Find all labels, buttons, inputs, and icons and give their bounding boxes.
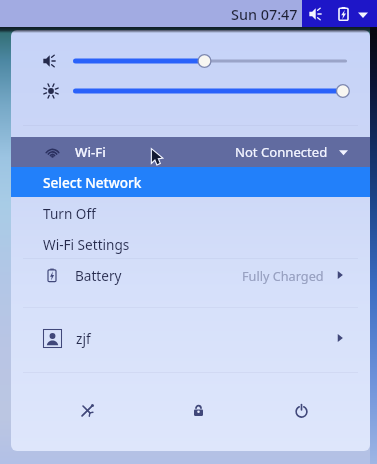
button[interactable]: Select Network xyxy=(11,167,370,197)
staticText: Sun 07:47 xyxy=(231,5,298,22)
button[interactable]: Battery xyxy=(11,260,370,290)
button[interactable]: Lock xyxy=(176,392,220,428)
button[interactable]: Settings xyxy=(65,392,109,428)
button[interactable]: zjf xyxy=(11,323,370,353)
button[interactable]: Wi-Fi Settings xyxy=(11,229,370,259)
staticText: Wi-Fi Settings xyxy=(43,235,130,254)
button[interactable]: System menu xyxy=(302,0,377,27)
button[interactable]: Wi-Fi xyxy=(11,137,370,167)
button[interactable]: Power xyxy=(279,392,323,428)
staticText: Battery xyxy=(75,266,122,285)
staticText: Fully Charged xyxy=(242,267,324,284)
staticText: Not Connected xyxy=(235,143,328,161)
button[interactable]: Brightness xyxy=(11,78,370,104)
button[interactable]: Volume xyxy=(11,48,370,74)
staticText: Select Network xyxy=(43,173,142,192)
button[interactable]: Turn Off xyxy=(11,198,370,228)
staticText: Wi-Fi xyxy=(75,143,106,161)
staticText: Turn Off xyxy=(43,204,96,223)
staticText: zjf xyxy=(76,329,91,348)
